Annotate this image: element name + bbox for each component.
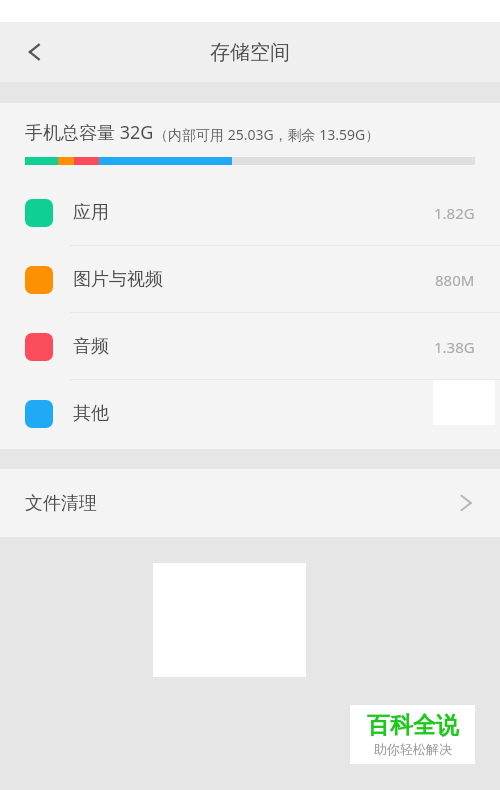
button[interactable]: 其他 bbox=[0, 380, 500, 447]
staticText: 手机总容量 32G bbox=[25, 120, 154, 145]
button[interactable]: 百科全说 bbox=[350, 705, 475, 764]
staticText: 助你轻松解决 bbox=[374, 741, 452, 757]
button[interactable]: Back bbox=[8, 26, 60, 78]
staticText: 1.82G bbox=[434, 203, 475, 223]
staticText: 880M bbox=[435, 270, 475, 290]
staticText: （内部可用 25.03G，剩余 13.59G） bbox=[154, 125, 380, 144]
staticText: 百科全说 bbox=[367, 711, 459, 740]
staticText: 音频 bbox=[73, 335, 109, 358]
staticText: 1.38G bbox=[434, 337, 475, 357]
staticText: 文件清理 bbox=[25, 492, 97, 515]
staticText: 应用 bbox=[73, 201, 109, 224]
staticText: 图片与视频 bbox=[73, 268, 163, 291]
staticText: 其他 bbox=[73, 402, 109, 425]
button[interactable]: 音频 bbox=[0, 313, 500, 380]
staticText: 存储空间 bbox=[210, 40, 290, 65]
button[interactable]: 应用 bbox=[0, 179, 500, 246]
button[interactable]: 文件清理 bbox=[0, 469, 500, 537]
button[interactable]: 图片与视频 bbox=[0, 246, 500, 313]
